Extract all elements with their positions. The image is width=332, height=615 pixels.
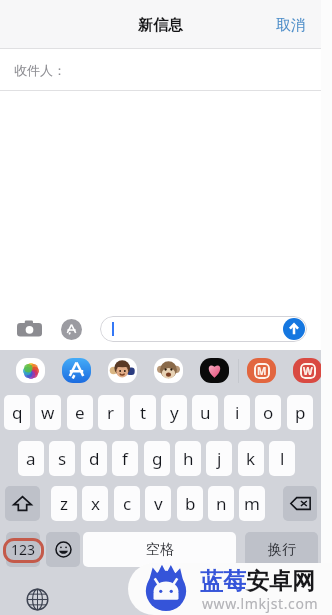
button[interactable]: Shift [5,486,40,521]
button[interactable]: Return [245,532,318,567]
button[interactable]: w [35,395,61,430]
staticText: e [75,401,85,424]
staticText: j [217,447,222,470]
button[interactable]: a [18,441,44,476]
button[interactable]: App 5 [200,358,229,383]
button[interactable]: App 6 [247,358,276,383]
button[interactable]: m [239,486,265,521]
button[interactable]: g [144,441,170,476]
staticText: x [91,492,100,515]
button[interactable]: s [49,441,75,476]
staticText: w [41,401,55,424]
staticText: 蓝莓 [200,567,246,596]
staticText: n [216,492,227,515]
staticText: f [122,447,128,470]
button[interactable]: App 3 [108,358,137,383]
button[interactable]: Space [83,532,236,567]
staticText: 安卓网 [246,567,315,596]
button[interactable]: l [269,441,295,476]
staticText: 新信息 [138,16,183,35]
staticText: b [185,492,196,515]
staticText: W [303,364,313,378]
button[interactable]: x [82,486,108,521]
button[interactable]: App 7 [293,358,322,383]
staticText: k [246,447,256,470]
button[interactable]: o [255,395,281,430]
staticText: z [60,492,68,515]
staticText: u [200,401,211,424]
button[interactable]: u [192,395,218,430]
staticText: l [280,447,285,470]
button[interactable]: z [51,486,77,521]
staticText: v [154,492,163,515]
button[interactable]: h [175,441,201,476]
button[interactable]: q [4,395,30,430]
staticText: y [170,401,179,424]
staticText: 123 [11,540,36,559]
button[interactable]: Send [100,316,307,342]
staticText: p [295,401,306,424]
button[interactable]: k [238,441,264,476]
button[interactable]: App 2 [62,358,91,383]
button[interactable]: App 4 [154,358,183,383]
button[interactable]: j [206,441,232,476]
button[interactable]: App Store [61,319,82,340]
button[interactable]: c [114,486,140,521]
button[interactable]: r [98,395,124,430]
staticText: r [107,401,115,424]
button[interactable]: App 1 [16,358,45,383]
button[interactable]: i [224,395,250,430]
button[interactable]: e [67,395,93,430]
staticText: s [58,447,67,470]
button[interactable]: v [145,486,171,521]
staticText: 空格 [146,541,174,559]
staticText: 换行 [268,541,296,559]
staticText: g [152,447,163,470]
staticText: www.lmkjst.com [202,594,319,613]
button[interactable]: 取消 [270,10,312,41]
staticText: 收件人： [14,62,66,78]
staticText: q [12,401,23,424]
button[interactable]: n [208,486,234,521]
staticText: c [123,492,132,515]
button[interactable]: Switch keyboard [26,588,49,611]
button[interactable]: Emoji [46,532,80,567]
button[interactable]: b [177,486,203,521]
button[interactable]: Camera [16,316,42,342]
staticText: M [257,364,267,378]
button[interactable]: d [81,441,107,476]
staticText: a [26,447,36,470]
button[interactable]: Send [283,318,305,340]
button[interactable]: p [287,395,313,430]
staticText: d [89,447,100,470]
button[interactable]: t [130,395,156,430]
button[interactable]: y [161,395,187,430]
button[interactable]: 123 [6,532,40,567]
button[interactable]: Backspace [283,486,317,521]
staticText: 取消 [276,16,306,35]
staticText: o [263,401,274,424]
staticText: t [140,401,147,424]
staticText: i [235,401,240,424]
button[interactable]: f [112,441,138,476]
staticText: h [183,447,194,470]
staticText: m [244,492,260,515]
